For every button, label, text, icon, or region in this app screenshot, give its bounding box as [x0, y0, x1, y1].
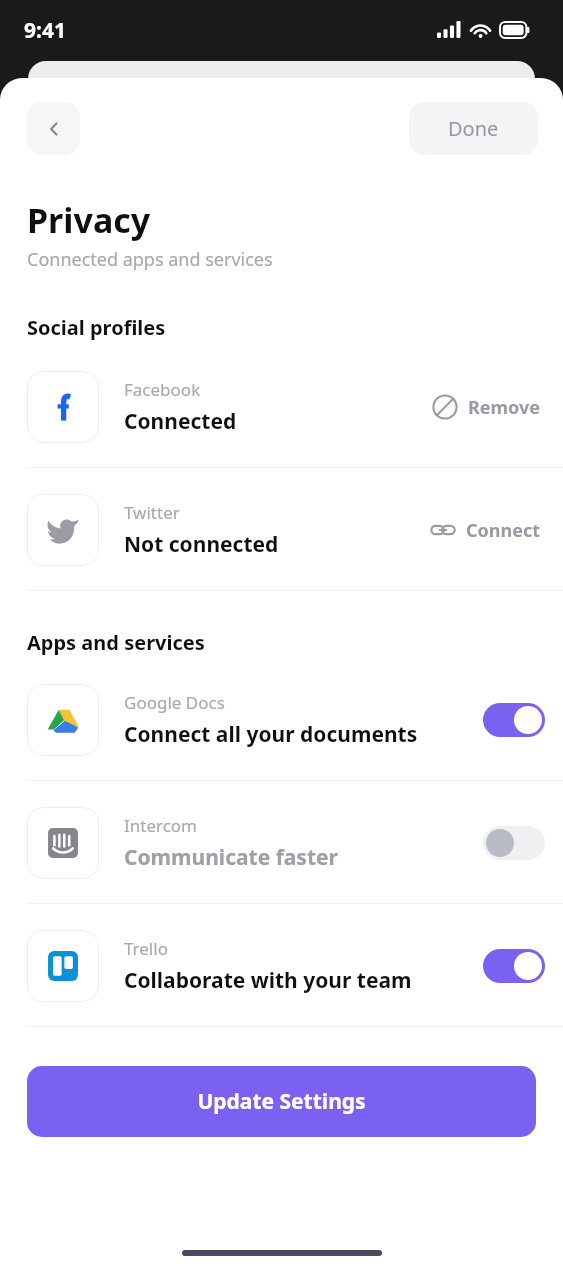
- button[interactable]: Update Settings: [27, 1066, 536, 1137]
- staticText: Privacy: [27, 197, 151, 243]
- button[interactable]: On: [483, 949, 545, 983]
- button[interactable]: Facebook: [0, 371, 563, 443]
- staticText: Facebook: [124, 378, 201, 401]
- staticText: Not connected: [124, 530, 279, 559]
- button[interactable]: Intercom: [0, 807, 563, 879]
- staticText: Remove: [468, 395, 541, 420]
- staticText: Connected: [124, 407, 237, 436]
- staticText: Update Settings: [197, 1087, 366, 1116]
- staticText: Done: [448, 115, 499, 142]
- staticText: Connected apps and services: [27, 247, 273, 272]
- button[interactable]: Off: [483, 826, 545, 860]
- button[interactable]: On: [483, 703, 545, 737]
- button[interactable]: Google Docs: [0, 684, 563, 756]
- staticText: Social profiles: [27, 314, 166, 341]
- button[interactable]: Done: [409, 102, 538, 155]
- button[interactable]: Remove: [428, 388, 545, 426]
- staticText: Collaborate with your team: [124, 966, 412, 995]
- button[interactable]: Trello: [0, 930, 563, 1002]
- staticText: Connect all your documents: [124, 720, 418, 749]
- button[interactable]: Twitter: [0, 494, 563, 566]
- staticText: 9:41: [24, 16, 66, 45]
- staticText: Intercom: [124, 814, 198, 837]
- staticText: Communicate faster: [124, 843, 338, 872]
- staticText: Google Docs: [124, 691, 225, 714]
- staticText: Connect: [466, 518, 541, 543]
- staticText: Twitter: [124, 501, 180, 524]
- button[interactable]: Connect: [426, 511, 545, 549]
- staticText: Trello: [124, 937, 168, 960]
- button[interactable]: Back: [27, 102, 80, 155]
- staticText: Apps and services: [27, 629, 205, 656]
